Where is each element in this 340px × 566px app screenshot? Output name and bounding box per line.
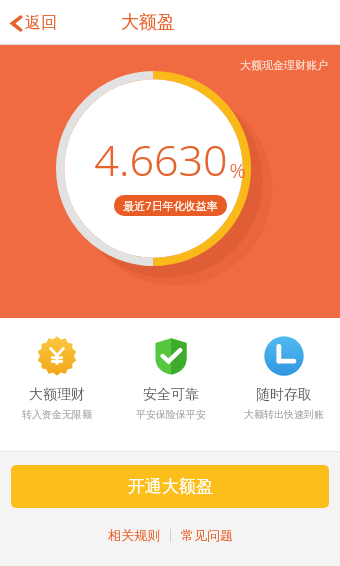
staticText: 随时存取 xyxy=(256,386,312,404)
staticText: 返回 xyxy=(25,13,57,33)
button[interactable]: 常见问题 xyxy=(171,523,243,547)
staticText: 大额现金理财账户 xyxy=(240,58,328,72)
other: 大额理财 xyxy=(36,335,78,377)
button[interactable]: 相关规则 xyxy=(98,523,170,547)
staticText: 大额理财 xyxy=(29,386,85,404)
other: 随时存取 xyxy=(263,335,305,377)
button[interactable]: 开通大额盈 xyxy=(11,465,329,508)
other: 安全可靠 xyxy=(150,335,192,377)
staticText: 大额盈 xyxy=(121,11,175,34)
staticText: % xyxy=(229,157,246,184)
staticText: 相关规则 xyxy=(108,527,160,543)
staticText: 常见问题 xyxy=(181,527,233,543)
staticText: 安全可靠 xyxy=(143,386,199,404)
staticText: 平安保险保平安 xyxy=(136,408,206,421)
staticText: 大额转出快速到账 xyxy=(244,408,324,421)
button[interactable]: 安全可靠 xyxy=(114,335,227,421)
staticText: 4.6630 xyxy=(94,130,228,189)
button[interactable]: 返回 xyxy=(0,7,69,39)
button[interactable]: 大额理财 xyxy=(0,335,114,421)
staticText: 最近7日年化收益率 xyxy=(123,198,218,213)
staticText: 转入资金无限额 xyxy=(22,408,92,421)
button[interactable]: 随时存取 xyxy=(227,335,340,421)
staticText: 开通大额盈 xyxy=(128,476,213,497)
